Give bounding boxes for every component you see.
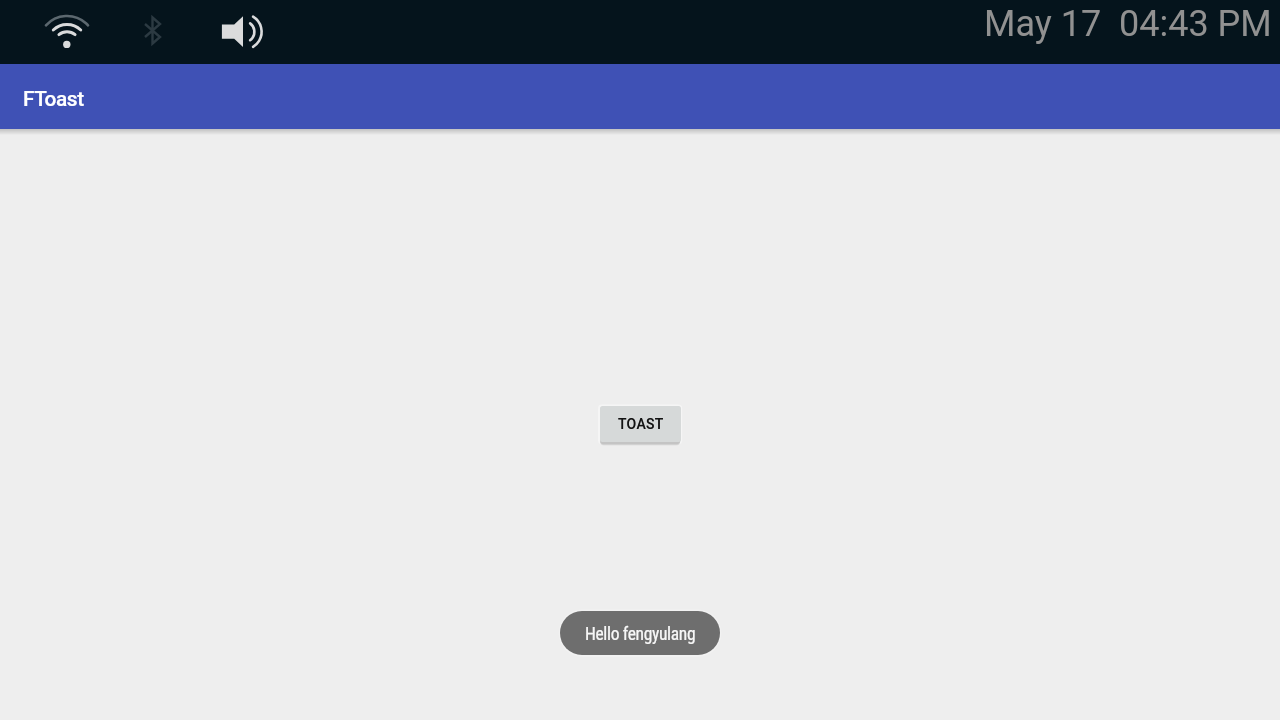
other: Volume on xyxy=(216,10,268,54)
staticText: Hello fengyulang xyxy=(585,624,696,645)
staticText: FToast xyxy=(23,87,84,111)
staticText: TOAST xyxy=(618,416,664,432)
staticText: May 17 04:43 PM xyxy=(984,3,1272,45)
staticText: TOAST xyxy=(618,416,664,432)
button[interactable]: TOAST xyxy=(600,406,681,442)
other: Bluetooth off xyxy=(138,10,168,54)
other: Wi-Fi connected xyxy=(38,8,96,56)
